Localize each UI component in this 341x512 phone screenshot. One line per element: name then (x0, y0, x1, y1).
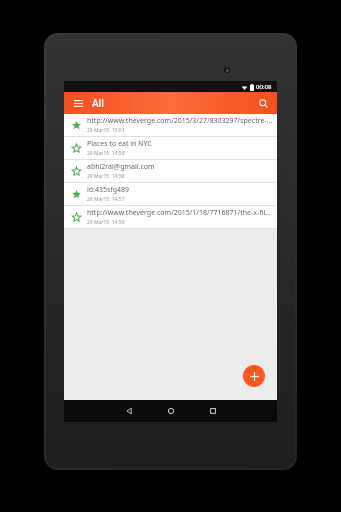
button[interactable]: Search (255, 95, 271, 111)
staticText: http://www.theverge.com/2015/3/27/830329… (87, 116, 273, 126)
button[interactable]: Unstar (64, 183, 277, 206)
staticText: All (92, 96, 104, 110)
button[interactable]: Star (68, 140, 84, 156)
staticText: 29 Mar15 14:56 (87, 219, 125, 226)
button[interactable]: Star (64, 137, 277, 160)
staticText: Places to eat in NYC (87, 139, 152, 149)
button[interactable]: Star (64, 206, 277, 229)
button[interactable]: Unstar (68, 117, 84, 133)
button[interactable]: Unstar (68, 186, 84, 202)
button[interactable]: Unstar (64, 114, 277, 137)
button[interactable]: Star (64, 160, 277, 183)
button[interactable]: Back (108, 400, 150, 422)
button[interactable]: Recent apps (192, 400, 234, 422)
staticText: http://www.theverge.com/2015/1/18/771687… (87, 208, 273, 218)
button[interactable]: Home (150, 400, 192, 422)
button[interactable]: Open navigation drawer (70, 95, 86, 111)
staticText: 29 Mar15 15:01 (87, 127, 125, 134)
button[interactable]: Star (68, 163, 84, 179)
button[interactable]: Add (243, 365, 265, 387)
staticText: abhi2rai@gmail.com (87, 162, 155, 172)
staticText: 29 Mar15 14:58 (87, 150, 125, 157)
staticText: 29 Mar15 14:58 (87, 173, 125, 180)
staticText: 29 Mar15 14:57 (87, 196, 125, 203)
button[interactable]: Star (68, 209, 84, 225)
staticText: 00:08 (256, 83, 272, 91)
staticText: id:435sfg489 (87, 185, 130, 195)
